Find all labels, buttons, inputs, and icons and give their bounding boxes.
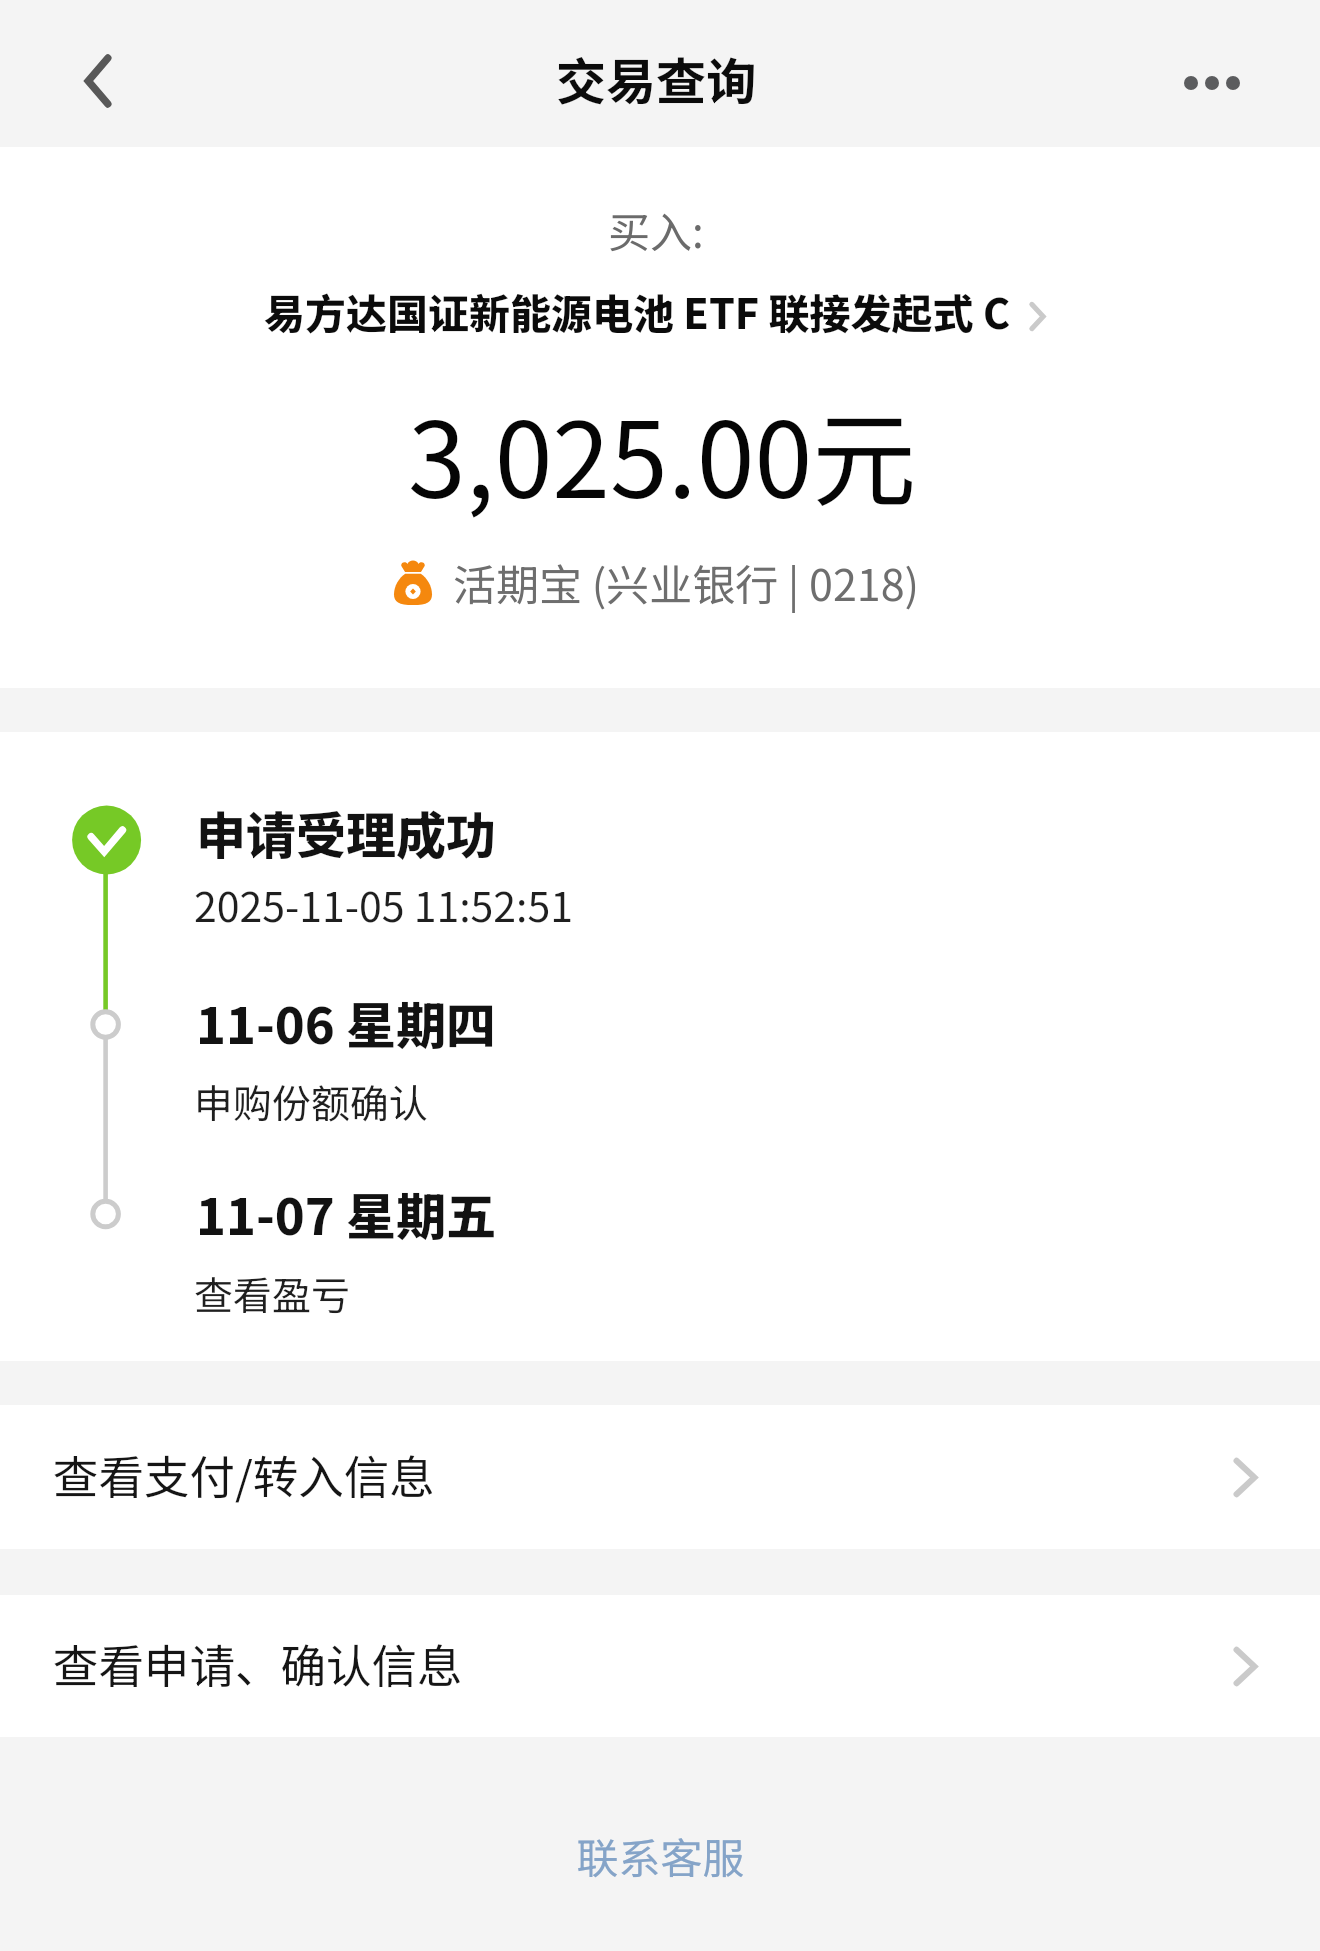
- staticText: 申购份额确认: [194, 1073, 429, 1129]
- staticText: 11-07 星期五: [196, 1177, 497, 1249]
- button[interactable]: Back: [0, 0, 147, 147]
- staticText: 查看申请、确认信息: [53, 1630, 463, 1696]
- staticText: 3,025.00元: [408, 377, 917, 528]
- staticText: 易方达国证新能源电池 ETF 联接发起式 C: [264, 281, 1011, 340]
- button[interactable]: More options: [1173, 0, 1320, 147]
- staticText: 交易查询: [556, 42, 756, 114]
- button[interactable]: 易方达国证新能源电池 ETF 联接发起式 C: [264, 281, 1045, 340]
- button[interactable]: 查看支付/转入信息: [0, 1405, 1320, 1549]
- staticText: 2025-11-05 11:52:51: [194, 874, 574, 933]
- staticText: 申请受理成功: [196, 796, 496, 868]
- staticText: 查看支付/转入信息: [53, 1441, 435, 1507]
- staticText: 买入:: [608, 199, 704, 260]
- staticText: 11-06 星期四: [196, 986, 497, 1058]
- staticText: 活期宝 (兴业银行 | 0218): [453, 551, 920, 613]
- button[interactable]: 联系客服: [576, 1825, 745, 1886]
- staticText: 查看盈亏: [194, 1265, 351, 1321]
- button[interactable]: 查看申请、确认信息: [0, 1595, 1320, 1737]
